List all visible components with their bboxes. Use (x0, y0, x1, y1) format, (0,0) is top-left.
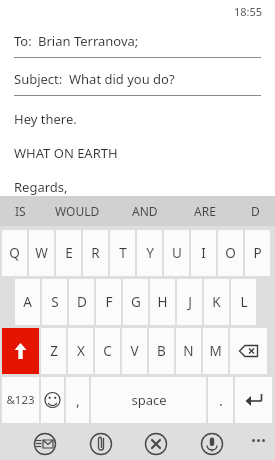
staticText: 18:55 (234, 4, 263, 19)
button[interactable]: Backspace (230, 328, 267, 374)
staticText: Y (146, 244, 154, 262)
button[interactable]: Emoji (41, 377, 64, 423)
staticText: Z (50, 342, 58, 360)
staticText: D (251, 203, 260, 219)
staticText: Regards, (14, 178, 68, 196)
button[interactable]: S (42, 279, 67, 325)
staticText: To: (14, 32, 32, 50)
staticText: T (119, 244, 127, 262)
staticText: E (65, 244, 73, 262)
staticText: A (23, 293, 32, 311)
button[interactable]: G (123, 279, 148, 325)
button[interactable]: Send (32, 431, 58, 457)
button[interactable]: A (15, 279, 40, 325)
button[interactable]: IS (0, 196, 40, 226)
button[interactable]: N (176, 328, 201, 374)
staticText: Hey there. (14, 110, 77, 128)
button[interactable]: , (66, 377, 89, 423)
button[interactable]: X (68, 328, 93, 374)
staticText: B (157, 342, 166, 360)
staticText: What did you do? (69, 70, 175, 88)
button[interactable]: Y (137, 230, 162, 276)
staticText: Q (9, 244, 20, 262)
button[interactable]: ARE (175, 196, 235, 226)
button[interactable]: W (29, 230, 54, 276)
button[interactable]: Shift (2, 328, 39, 374)
staticText: WHAT ON EARTH (14, 144, 118, 162)
staticText: D (77, 293, 87, 311)
button[interactable]: O (218, 230, 243, 276)
button[interactable]: More options (252, 439, 265, 442)
button[interactable]: P (245, 230, 270, 276)
button[interactable]: Attach (88, 431, 114, 457)
staticText: , (76, 391, 80, 410)
button[interactable]: Enter (235, 377, 272, 423)
staticText: space (131, 391, 167, 409)
button[interactable]: V (122, 328, 147, 374)
staticText: . (219, 391, 223, 410)
button[interactable]: L (231, 279, 256, 325)
staticText: M (209, 342, 222, 360)
staticText: H (157, 293, 168, 311)
staticText: C (103, 342, 112, 360)
button[interactable]: AND (115, 196, 175, 226)
staticText: Brian Terranova; (38, 32, 139, 50)
button[interactable]: R (83, 230, 108, 276)
staticText: U (172, 244, 182, 262)
button[interactable]: U (164, 230, 189, 276)
staticText: K (212, 293, 221, 311)
button[interactable]: Voice input (199, 431, 225, 457)
button[interactable]: D (235, 196, 275, 226)
staticText: I (201, 244, 206, 262)
button[interactable]: D (69, 279, 94, 325)
button[interactable]: F (96, 279, 121, 325)
staticText: W (35, 244, 48, 262)
staticText: AND (132, 203, 158, 219)
button[interactable]: J (177, 279, 202, 325)
button[interactable]: T (110, 230, 135, 276)
button[interactable]: M (203, 328, 228, 374)
button[interactable]: Z (41, 328, 66, 374)
staticText: V (130, 342, 139, 360)
button[interactable]: . (208, 377, 233, 423)
staticText: G (131, 293, 141, 311)
staticText: Subject: (14, 70, 63, 88)
staticText: J (188, 293, 192, 311)
button[interactable]: WOULD (40, 196, 115, 226)
button[interactable]: E (56, 230, 81, 276)
staticText: L (240, 293, 248, 311)
button[interactable]: B (149, 328, 174, 374)
button[interactable]: &123 (2, 377, 39, 423)
button[interactable]: C (95, 328, 120, 374)
staticText: O (225, 244, 236, 262)
button[interactable]: Q (2, 230, 27, 276)
staticText: S (51, 293, 59, 311)
staticText: WOULD (55, 203, 100, 219)
staticText: P (253, 244, 262, 262)
staticText: X (77, 342, 85, 360)
button[interactable]: H (150, 279, 175, 325)
button[interactable]: K (204, 279, 229, 325)
staticText: F (105, 293, 113, 311)
staticText: R (91, 244, 100, 262)
button[interactable]: space (91, 377, 206, 423)
staticText: ARE (194, 203, 216, 219)
staticText: IS (15, 203, 26, 219)
button[interactable]: Close (143, 431, 169, 457)
button[interactable]: I (191, 230, 216, 276)
staticText: N (183, 342, 194, 360)
staticText: &123 (6, 392, 35, 408)
